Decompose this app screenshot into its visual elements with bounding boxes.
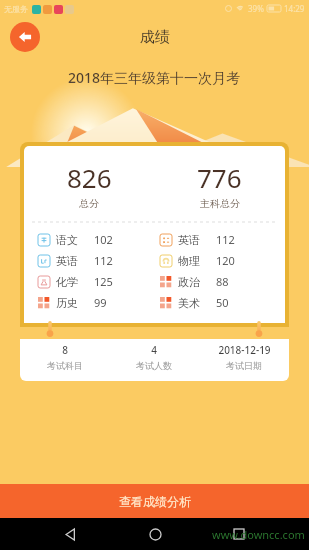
staticText: 2018-12-19: [218, 343, 271, 357]
button[interactable]: 查看成绩分析: [0, 484, 309, 518]
button[interactable]: 英语: [38, 250, 154, 271]
button[interactable]: 语文: [38, 229, 154, 250]
button[interactable]: 政治: [160, 271, 285, 292]
staticText: 39%: [248, 3, 264, 14]
button[interactable]: Back: [10, 22, 40, 52]
staticText: 8: [62, 343, 68, 357]
staticText: 99: [94, 295, 107, 310]
staticText: 112: [94, 253, 113, 268]
button[interactable]: 英语: [160, 229, 285, 250]
button[interactable]: 物理: [160, 250, 285, 271]
staticText: 政治: [178, 275, 200, 289]
staticText: 化学: [56, 275, 78, 289]
staticText: 14:29: [284, 3, 305, 14]
staticText: 125: [94, 274, 113, 289]
staticText: 历史: [56, 296, 78, 310]
staticText: 主科总分: [200, 197, 240, 210]
staticText: 英语: [178, 233, 200, 247]
staticText: 考试科目: [47, 360, 83, 371]
button[interactable]: Recents: [225, 520, 253, 548]
staticText: 物理: [178, 254, 200, 268]
staticText: 查看成绩分析: [119, 494, 191, 509]
button[interactable]: 美术: [160, 292, 285, 313]
button[interactable]: Back: [56, 520, 84, 548]
staticText: 考试日期: [226, 360, 262, 371]
staticText: 成绩: [140, 28, 170, 47]
staticText: 102: [94, 232, 113, 247]
staticText: 88: [216, 274, 229, 289]
staticText: 2018年三年级第十一次月考: [68, 68, 241, 87]
staticText: 112: [216, 232, 235, 247]
button[interactable]: Home: [141, 520, 169, 548]
staticText: 50: [216, 295, 229, 310]
staticText: 776: [197, 160, 242, 195]
staticText: 总分: [79, 197, 99, 210]
staticText: 英语: [56, 254, 78, 268]
staticText: 美术: [178, 296, 200, 310]
staticText: 4: [151, 343, 157, 357]
button[interactable]: 历史: [38, 292, 154, 313]
staticText: 826: [67, 160, 112, 195]
staticText: www.downcc.com: [212, 527, 305, 542]
staticText: 语文: [56, 233, 78, 247]
staticText: 考试人数: [136, 360, 172, 371]
staticText: 无服务: [4, 4, 28, 14]
staticText: 120: [216, 253, 235, 268]
button[interactable]: 化学: [38, 271, 154, 292]
